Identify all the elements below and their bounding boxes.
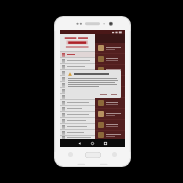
button[interactable]: Back [112,152,117,157]
button[interactable] [61,109,125,119]
button[interactable] [60,34,95,51]
button[interactable] [60,70,95,76]
button[interactable] [61,76,125,86]
button[interactable] [60,94,95,100]
button[interactable] [60,106,95,112]
button[interactable] [60,82,95,88]
button[interactable] [61,43,125,53]
button[interactable] [60,136,95,139]
button[interactable] [60,58,95,64]
button[interactable] [61,65,125,75]
button[interactable] [110,93,118,96]
button[interactable] [60,112,95,118]
button[interactable]: Home [88,139,97,147]
button[interactable] [61,131,125,139]
button[interactable] [60,130,95,136]
button[interactable] [60,52,95,58]
button[interactable] [60,76,95,82]
button[interactable] [99,93,108,96]
button[interactable] [60,100,95,106]
button[interactable] [60,64,95,70]
button[interactable] [61,54,125,64]
button[interactable] [61,87,125,97]
button[interactable] [61,98,125,108]
button[interactable]: Recents [68,152,73,157]
button[interactable]: Recents [101,139,110,147]
button[interactable]: Back [75,139,84,147]
button[interactable] [61,120,125,130]
button[interactable] [60,88,95,94]
button[interactable]: Home [85,152,101,158]
button[interactable] [60,118,95,124]
button[interactable] [60,124,95,130]
